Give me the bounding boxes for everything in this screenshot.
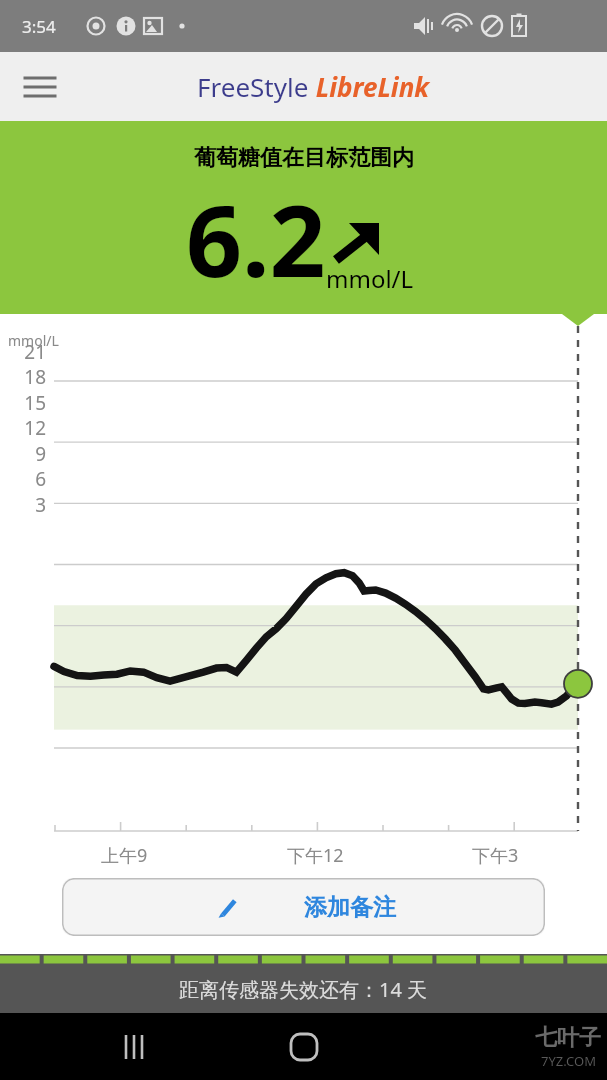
staticText: mmol/L: [8, 331, 59, 350]
staticText: 12: [24, 415, 46, 441]
staticText: 上午9: [101, 843, 148, 868]
button[interactable]: 距离传感器失效还有：14 天: [0, 965, 607, 1013]
staticText: 15: [24, 390, 46, 416]
staticText: 6: [35, 466, 46, 492]
button[interactable]: Home: [282, 1025, 326, 1069]
staticText: mmol/L: [326, 262, 414, 295]
button[interactable]: Recents: [112, 1025, 156, 1069]
button[interactable]: Menu: [18, 65, 62, 109]
staticText: 距离传感器失效还有：14 天: [179, 976, 428, 1003]
staticText: 7YZ.COM: [541, 1052, 596, 1070]
staticText: 18: [24, 364, 46, 390]
staticText: 下午12: [287, 843, 344, 868]
staticText: 添加备注: [304, 893, 396, 922]
staticText: 七叶子: [535, 1024, 601, 1052]
staticText: 下午3: [472, 843, 519, 868]
staticText: LibreLink: [309, 69, 430, 104]
staticText: 6.2: [186, 172, 326, 305]
staticText: 21: [24, 339, 46, 365]
staticText: 9: [35, 441, 46, 467]
staticText: 葡萄糖值在目标范围内: [194, 144, 414, 172]
staticText: 3: [35, 492, 46, 518]
button[interactable]: 添加备注: [62, 878, 545, 936]
staticText: 3:54: [22, 15, 56, 38]
staticText: FreeStyle: [197, 69, 309, 104]
